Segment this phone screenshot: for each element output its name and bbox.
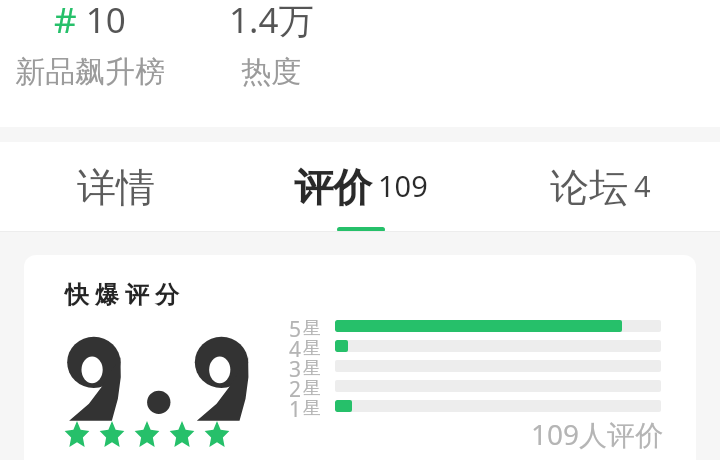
staticText: 109人评价 [531, 415, 664, 453]
staticText: 热度 [241, 53, 301, 91]
button[interactable]: 论坛 [500, 142, 700, 232]
staticText: 星 [303, 317, 321, 340]
staticText: 4 [634, 166, 651, 205]
staticText: 109 [378, 166, 428, 205]
staticText: 3 [289, 355, 302, 384]
button[interactable]: 评价 [261, 142, 461, 232]
staticText: 4 [289, 335, 302, 364]
staticText: # 10 [54, 0, 126, 44]
button[interactable]: 快爆评分 [24, 255, 696, 460]
staticText: 2 [289, 375, 302, 404]
button[interactable]: # 10 [0, 0, 180, 123]
staticText: 评价 [294, 163, 372, 212]
staticText: 论坛 [550, 163, 628, 212]
staticText: 快爆评分 [62, 280, 182, 310]
button[interactable]: 1.4万 [181, 0, 361, 123]
staticText: 星 [303, 377, 321, 400]
staticText: 1.4万 [229, 0, 314, 44]
staticText: 详情 [77, 163, 155, 212]
staticText: 星 [303, 337, 321, 360]
staticText: 1 [289, 395, 302, 424]
button[interactable]: 详情 [16, 142, 216, 232]
staticText: 星 [303, 397, 321, 420]
staticText: 新品飙升榜 [15, 53, 165, 91]
staticText: 星 [303, 357, 321, 380]
staticText: 5 [289, 315, 302, 344]
